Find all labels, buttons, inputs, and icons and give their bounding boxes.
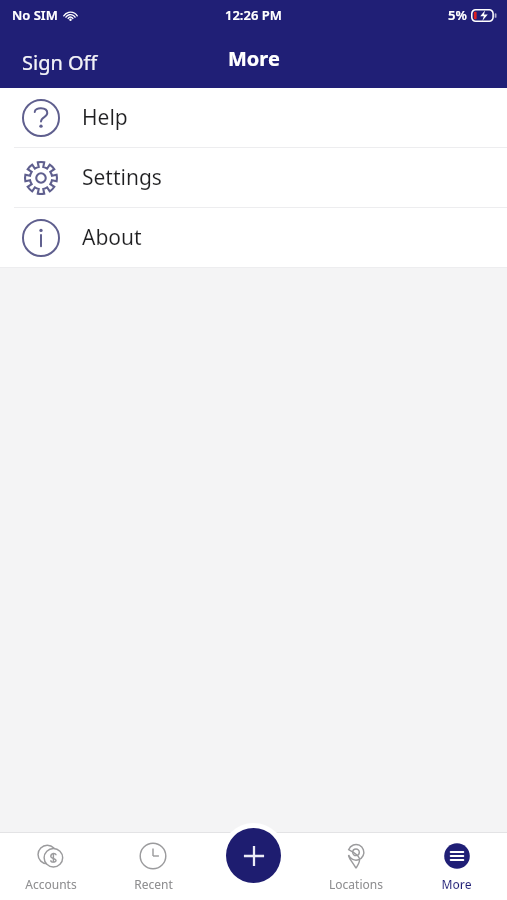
button[interactable]: Accounts <box>0 840 102 892</box>
button[interactable]: Locations <box>305 840 406 892</box>
staticText: Accounts <box>25 876 77 892</box>
staticText: More <box>441 876 472 892</box>
button[interactable]: Help <box>0 88 507 147</box>
staticText: Help <box>82 103 128 132</box>
staticText: Locations <box>329 876 383 892</box>
staticText: Sign Off <box>22 49 98 76</box>
button[interactable]: About <box>0 208 507 267</box>
button[interactable]: Settings <box>0 148 507 207</box>
button[interactable]: Recent <box>102 840 204 892</box>
staticText: 12:26 PM <box>225 6 282 24</box>
staticText: 5% <box>448 6 467 24</box>
staticText: About <box>82 223 142 252</box>
staticText: Settings <box>82 163 162 192</box>
staticText: More <box>228 45 280 72</box>
staticText: Recent <box>134 876 173 892</box>
button[interactable]: Add <box>226 828 281 883</box>
button[interactable]: More <box>406 840 507 892</box>
button[interactable]: Sign Off <box>10 45 110 80</box>
staticText: No SIM <box>12 6 58 24</box>
